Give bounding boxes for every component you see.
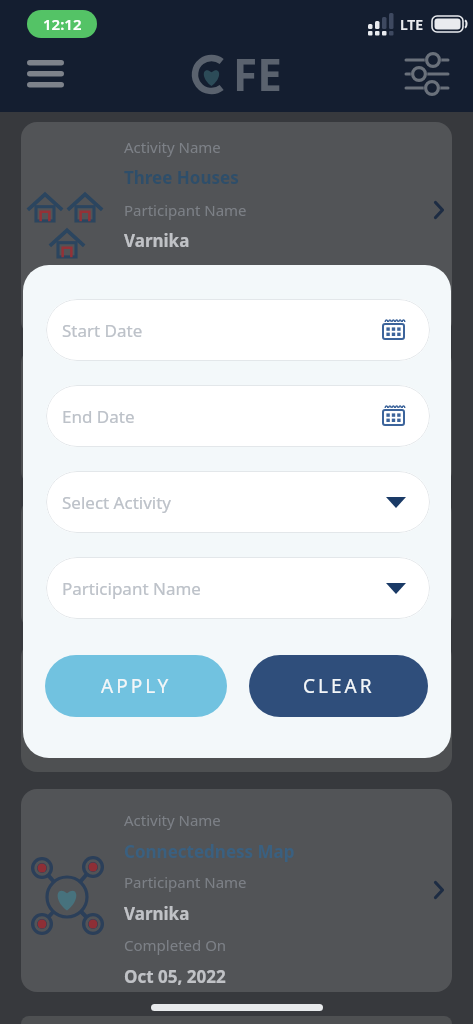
button[interactable] — [20, 52, 70, 96]
staticText: CLEAR — [303, 673, 375, 699]
button[interactable]: Start Date — [46, 299, 430, 361]
staticText: Varnika — [124, 902, 190, 925]
button[interactable]: 12:12 — [27, 10, 97, 38]
staticText: LTE — [400, 15, 424, 34]
button[interactable]: Activity Name — [21, 789, 452, 992]
staticText: FE — [233, 44, 282, 104]
staticText: Start Date — [62, 319, 143, 342]
button[interactable]: APPLY — [45, 655, 227, 717]
staticText: Oct 05, 2022 — [124, 965, 226, 988]
staticText: Activity Name — [124, 810, 221, 830]
button[interactable]: Participant Name — [46, 557, 430, 619]
staticText: End Date — [62, 405, 135, 428]
staticText: 12:12 — [43, 14, 82, 34]
staticText: Activity Name — [124, 137, 221, 157]
button[interactable]: CLEAR — [249, 655, 428, 717]
button[interactable]: Activity Name — [21, 122, 452, 337]
staticText: Connectedness Map — [124, 840, 295, 863]
button[interactable]: Select Activity — [46, 471, 430, 533]
staticText: Participant Name — [124, 200, 247, 220]
button[interactable]: End Date — [46, 385, 430, 447]
staticText: Select Activity — [62, 491, 171, 514]
staticText: Completed On — [124, 935, 227, 955]
button[interactable] — [400, 50, 456, 98]
staticText: APPLY — [101, 673, 172, 699]
staticText: Participant Name — [62, 577, 201, 600]
staticText: Varnika — [124, 229, 190, 252]
staticText: Participant Name — [124, 872, 247, 892]
staticText: Three Houses — [124, 166, 239, 189]
